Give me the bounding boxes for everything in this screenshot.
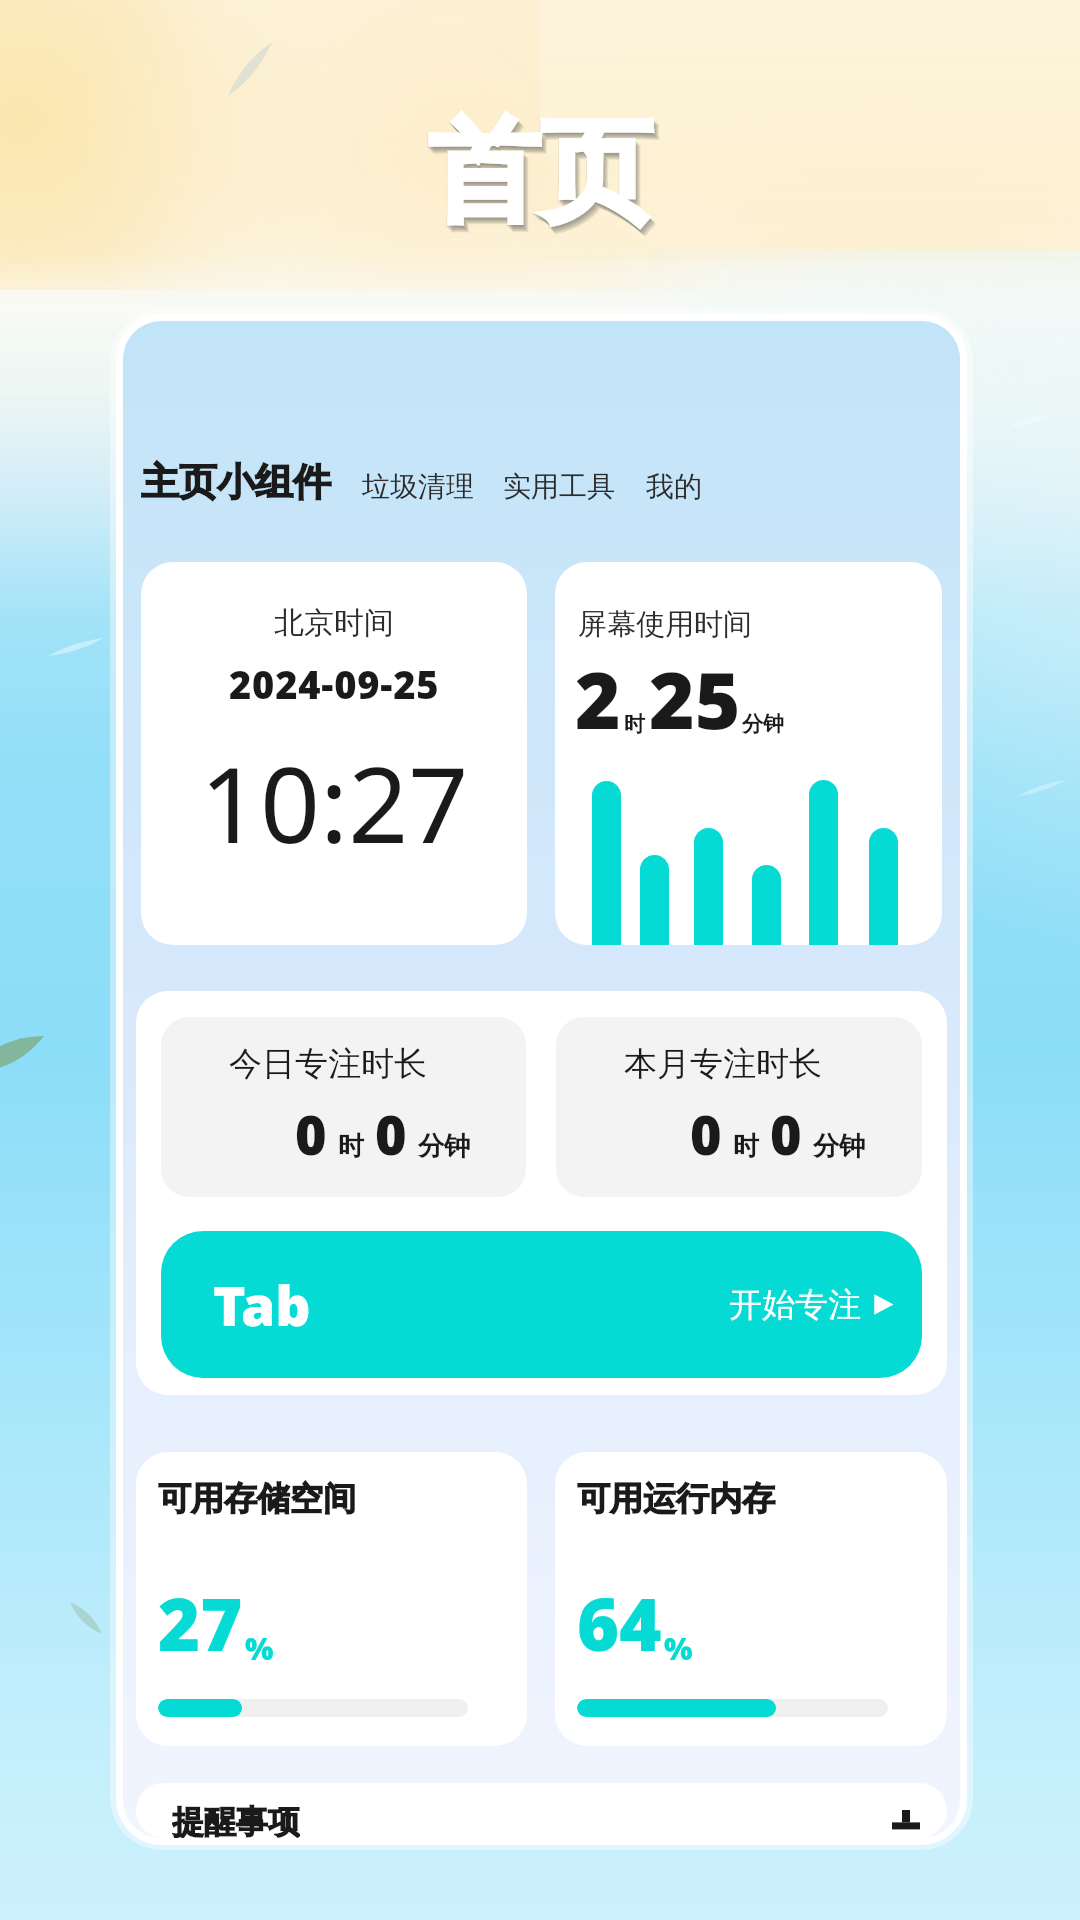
staticText: 分钟 [813,1130,865,1163]
staticText: 64 [577,1574,662,1672]
staticText: 时 [338,1130,364,1163]
staticText: 首页 [433,109,657,250]
staticText: 首页 [431,107,655,248]
staticText: 我的 [646,469,702,504]
staticText: 首页 [428,102,652,243]
staticText: 屏幕使用时间 [578,606,752,643]
staticText: 0 [690,1097,722,1171]
button[interactable]: Download [892,1810,922,1830]
staticText: 主页小组件 [141,458,331,506]
staticText: 10:27 [200,731,469,874]
button[interactable]: 屏幕使用时间 [555,562,942,945]
button[interactable]: 北京时间 [141,562,527,945]
staticText: 实用工具 [503,469,615,504]
staticText: 0 [375,1097,407,1171]
button[interactable]: 本月专注时长 [556,1017,922,1197]
button[interactable]: 主页小组件 [141,458,331,506]
staticText: 时 [733,1130,759,1163]
button[interactable]: 今日专注时长 [161,1017,526,1197]
staticText: 今日专注时长 [229,1043,427,1085]
staticText: 本月专注时长 [624,1043,822,1085]
staticText: 2 [575,646,621,752]
staticText: 提醒事项 [172,1802,300,1838]
button[interactable]: Tab [161,1231,922,1378]
staticText: 可用运行内存 [577,1478,775,1520]
staticText: 分钟 [742,711,784,737]
staticText: 首页 [427,103,651,244]
button[interactable]: 垃圾清理 [362,469,474,506]
staticText: 0 [295,1097,327,1171]
staticText: 北京时间 [274,604,394,642]
staticText: 时 [624,711,645,737]
staticText: 可用存储空间 [158,1478,356,1520]
staticText: Tab [213,1267,311,1342]
staticText: 首页 [428,104,652,245]
staticText: 首页 [429,105,653,246]
staticText: 开始专注 [729,1284,861,1326]
button[interactable]: 提醒事项 [136,1783,947,1838]
staticText: 25 [649,646,741,752]
button[interactable]: 可用运行内存 [555,1452,947,1746]
staticText: 垃圾清理 [362,469,474,504]
staticText: 首页 [430,106,654,247]
staticText: 首页 [432,108,656,249]
staticText: 27 [158,1574,243,1672]
staticText: % [245,1628,274,1669]
button[interactable]: 我的 [646,469,702,506]
staticText: 0 [770,1097,802,1171]
button[interactable]: 可用存储空间 [136,1452,527,1746]
staticText: 2024-09-25 [229,658,440,710]
staticText: % [664,1628,693,1669]
button[interactable]: 实用工具 [503,469,615,506]
staticText: 分钟 [418,1130,470,1163]
